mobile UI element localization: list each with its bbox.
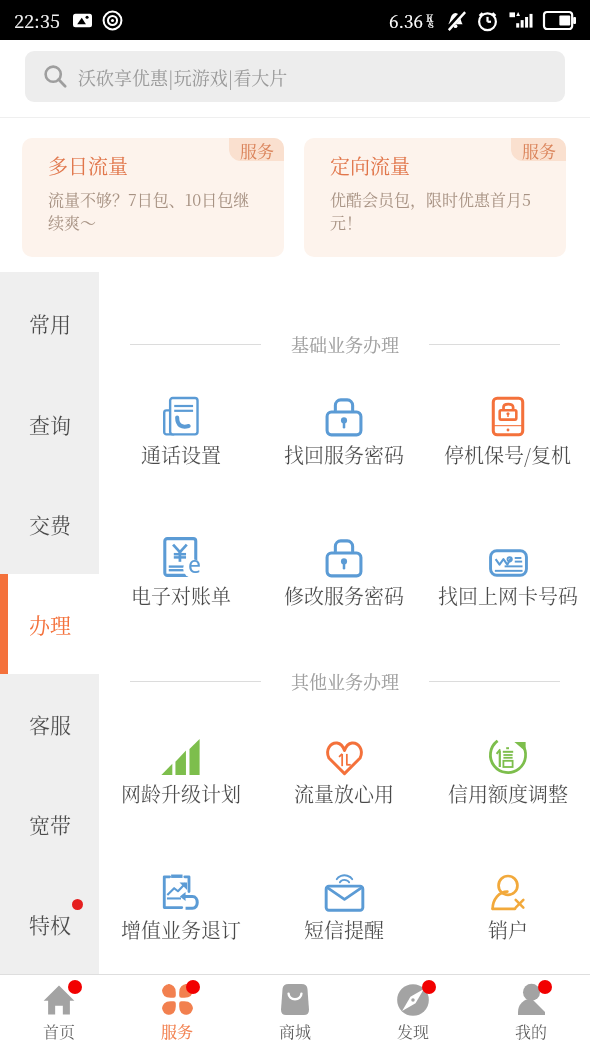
staticText: 特权: [29, 909, 71, 939]
button[interactable]: 商城: [236, 975, 354, 1048]
button[interactable]: 信用额度调整: [426, 731, 590, 808]
staticText: 流量放心用: [294, 779, 394, 808]
staticText: 交费: [29, 509, 71, 539]
staticText: 宽带: [29, 809, 71, 839]
button[interactable]: 网龄升级计划: [99, 731, 262, 808]
button[interactable]: 找回服务密码: [262, 392, 426, 469]
staticText: 服务: [522, 138, 556, 161]
staticText: 6.36: [389, 8, 423, 32]
staticText: 网龄升级计划: [121, 779, 241, 808]
staticText: 服务: [161, 1020, 194, 1043]
button[interactable]: 停机保号/复机: [426, 392, 590, 469]
button[interactable]: 服务: [304, 138, 566, 257]
staticText: 停机保号/复机: [444, 440, 572, 469]
button[interactable]: 通话设置: [99, 392, 262, 469]
staticText: s: [429, 16, 434, 30]
staticText: 多日流量: [48, 151, 128, 180]
button[interactable]: 服务: [118, 975, 236, 1048]
button[interactable]: 交费: [0, 474, 99, 574]
staticText: 商城: [279, 1020, 312, 1043]
staticText: 短信提醒: [304, 915, 384, 944]
staticText: 客服: [29, 709, 71, 739]
staticText: 常用: [29, 308, 71, 338]
button[interactable]: 特权: [0, 874, 99, 974]
button[interactable]: 服务: [22, 138, 284, 257]
staticText: 办理: [29, 609, 71, 639]
staticText: 优酷会员包，限时优惠首月5 元！: [330, 188, 531, 233]
staticText: /: [428, 12, 432, 28]
staticText: 首页: [43, 1020, 76, 1043]
staticText: 定向流量: [330, 151, 410, 180]
staticText: 信用额度调整: [448, 779, 568, 808]
button[interactable]: 修改服务密码: [262, 533, 426, 610]
staticText: K: [426, 10, 434, 24]
button[interactable]: 常用: [0, 272, 99, 373]
button[interactable]: 流量放心用: [262, 731, 426, 808]
staticText: 修改服务密码: [284, 581, 404, 610]
staticText: 找回服务密码: [284, 440, 404, 469]
staticText: 我的: [515, 1020, 548, 1043]
staticText: 22:35: [14, 7, 61, 33]
button[interactable]: e: [99, 533, 262, 610]
staticText: 服务: [240, 138, 274, 161]
button[interactable]: 发现: [354, 975, 472, 1048]
staticText: 查询: [29, 409, 71, 439]
staticText: 基础业务办理: [291, 331, 399, 357]
button[interactable]: 客服: [0, 674, 99, 774]
button[interactable]: 宽带: [0, 774, 99, 874]
staticText: 通话设置: [141, 440, 221, 469]
staticText: 电子对账单: [131, 581, 231, 610]
staticText: 发现: [397, 1020, 430, 1043]
button[interactable]: 首页: [0, 975, 118, 1048]
button[interactable]: 找回上网卡号码: [426, 533, 590, 610]
staticText: 沃砍享优惠|玩游戏|看大片: [78, 64, 288, 90]
button[interactable]: 我的: [472, 975, 590, 1048]
staticText: 其他业务办理: [291, 668, 399, 694]
button[interactable]: 沃砍享优惠|玩游戏|看大片: [25, 51, 565, 102]
button[interactable]: 增值业务退订: [99, 867, 262, 944]
staticText: e: [188, 548, 201, 579]
button[interactable]: 办理: [0, 574, 99, 674]
staticText: 增值业务退订: [121, 915, 241, 944]
staticText: 销户: [488, 915, 528, 944]
staticText: 找回上网卡号码: [438, 581, 578, 610]
button[interactable]: 短信提醒: [262, 867, 426, 944]
button[interactable]: 查询: [0, 373, 99, 474]
button[interactable]: 销户: [426, 867, 590, 944]
staticText: 流量不够？7日包、10日包继 续爽～: [48, 188, 250, 233]
